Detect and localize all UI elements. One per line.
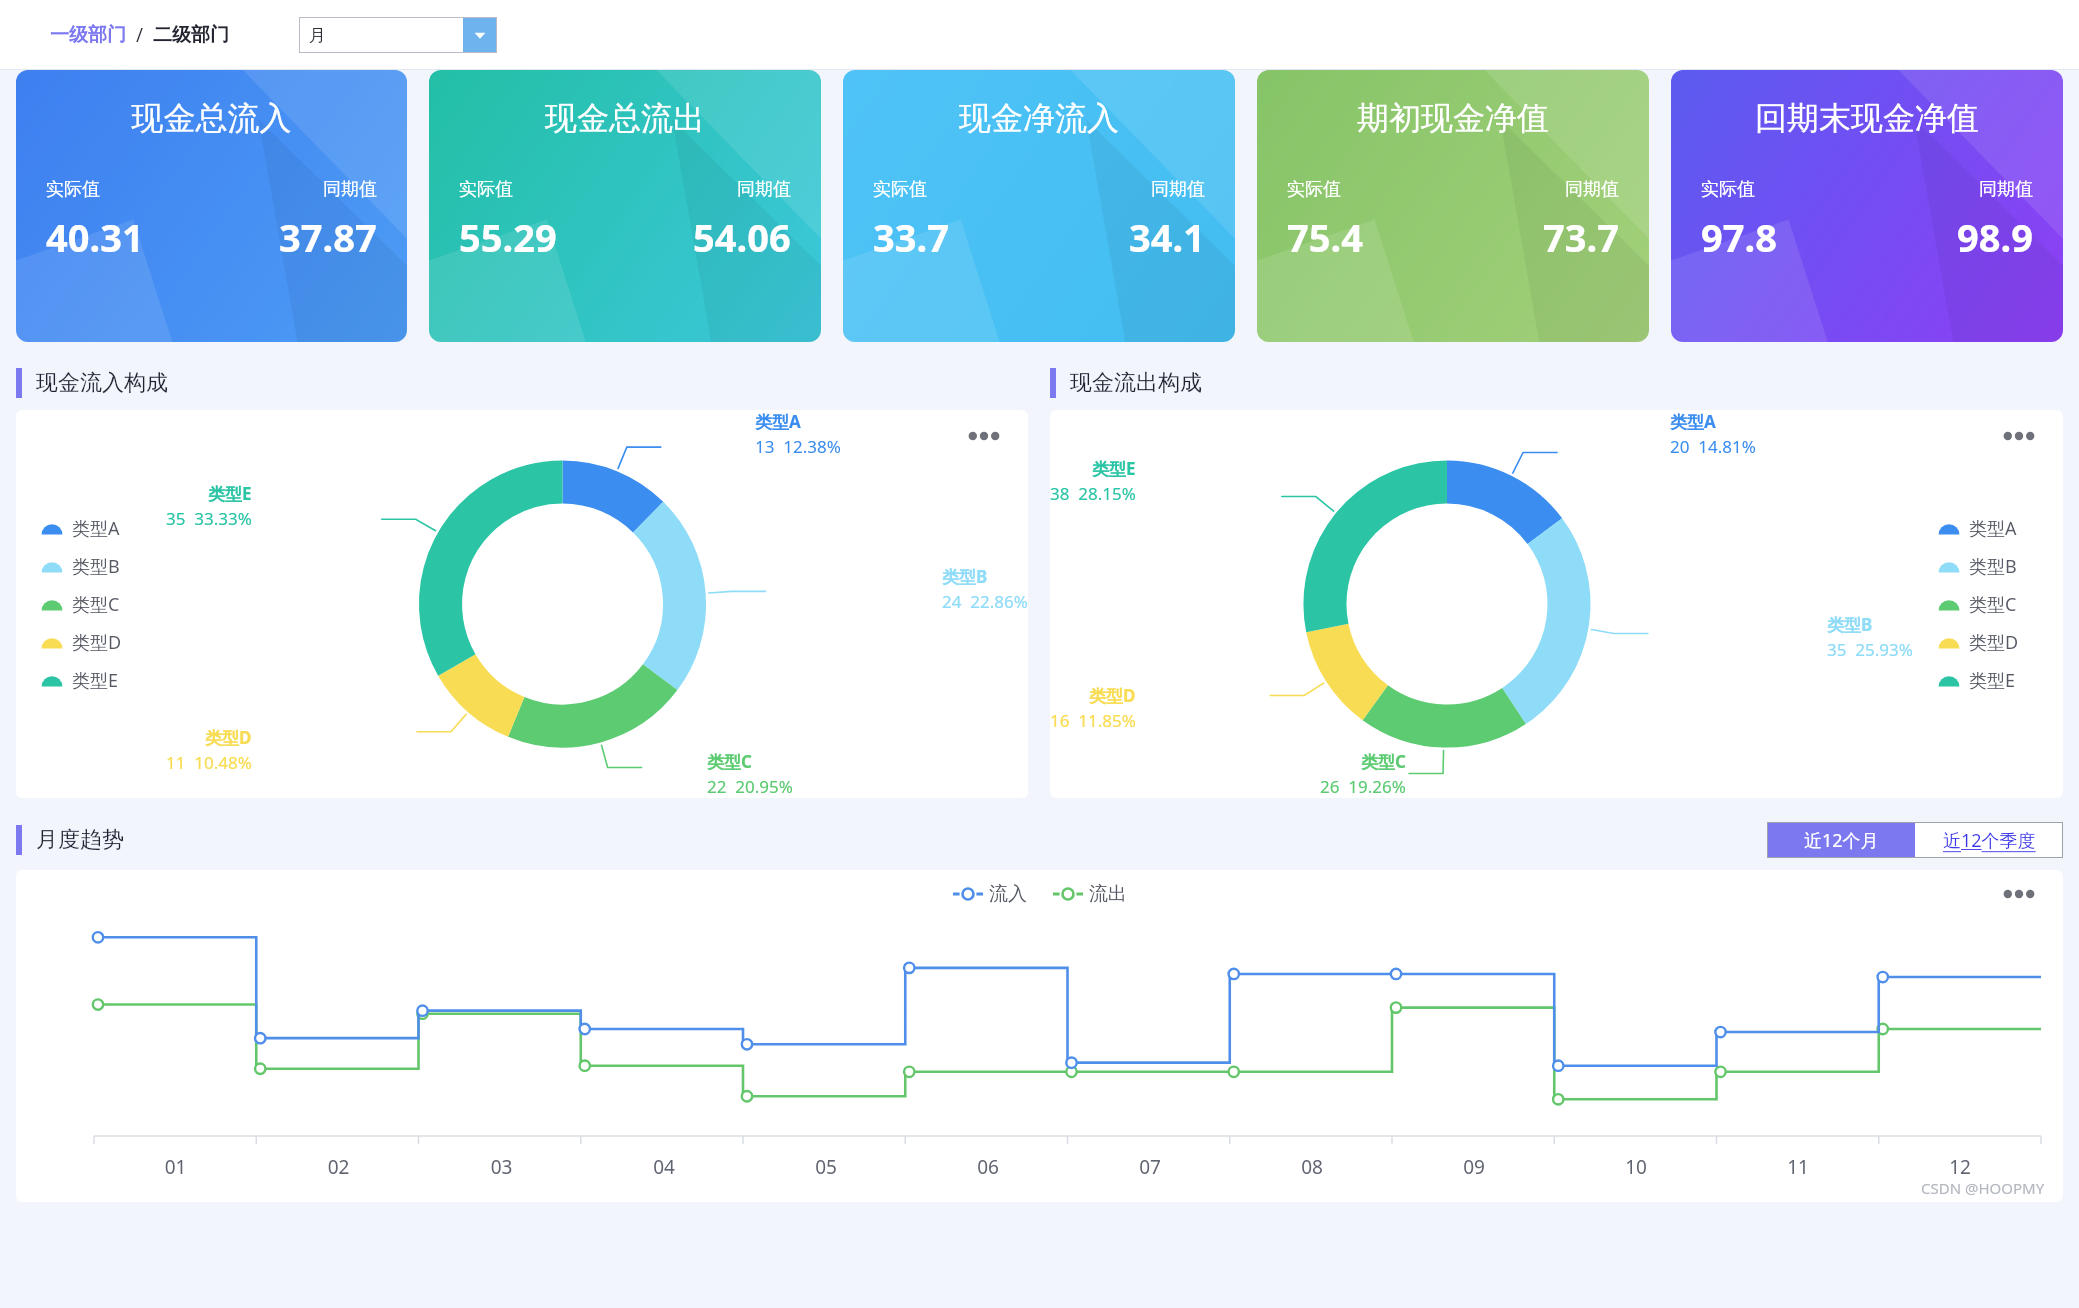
button[interactable]: 类型C — [1939, 585, 2017, 623]
staticText: 16 11.85% — [1050, 709, 1136, 732]
button[interactable]: More options — [962, 422, 1006, 450]
button[interactable]: 类型D — [42, 623, 122, 661]
staticText: 类型E — [208, 482, 252, 505]
staticText: 55.29 — [459, 211, 557, 263]
button[interactable]: 类型E — [1939, 661, 2016, 699]
button[interactable]: 现金净流入 — [843, 70, 1235, 342]
staticText: 流出 — [1089, 882, 1127, 906]
staticText: 实际值 — [1287, 178, 1341, 201]
staticText: 月度趋势 — [36, 826, 124, 854]
staticText: 近12个月 — [1804, 828, 1879, 853]
staticText: CSDN @HOOPMY — [1921, 1178, 2045, 1198]
staticText: 现金流入构成 — [36, 369, 168, 397]
staticText: 同期值 — [323, 178, 377, 201]
staticText: 09 — [1393, 1154, 1555, 1180]
staticText: 75.4 — [1287, 211, 1363, 263]
staticText: 类型B — [1827, 613, 1873, 636]
button[interactable]: 类型E — [42, 661, 119, 699]
button[interactable]: 近12个季度 — [1915, 822, 2063, 858]
button[interactable]: 类型B — [1939, 547, 2017, 585]
button[interactable]: More options — [1997, 880, 2041, 908]
staticText: 类型D — [205, 726, 252, 749]
staticText: 类型A — [755, 410, 801, 433]
staticText: 实际值 — [873, 178, 927, 201]
staticText: 10 — [1555, 1154, 1717, 1180]
button[interactable]: 二级部门 — [153, 23, 229, 47]
staticText: 同期值 — [1151, 178, 1205, 201]
staticText: 02 — [257, 1154, 420, 1180]
staticText: 类型A — [72, 516, 120, 541]
staticText: 类型C — [1361, 750, 1406, 773]
button[interactable]: More options — [1997, 422, 2041, 450]
staticText: 05 — [745, 1154, 907, 1180]
button[interactable]: 流出 — [1053, 882, 1127, 906]
staticText: 期初现金净值 — [1257, 98, 1649, 138]
staticText: 近12个季度 — [1943, 828, 2036, 853]
staticText: 11 — [1717, 1154, 1879, 1180]
staticText: 54.06 — [693, 211, 791, 263]
staticText: 流入 — [989, 882, 1027, 906]
staticText: 01 — [94, 1154, 257, 1180]
staticText: 12 — [1879, 1154, 2041, 1180]
staticText: 08 — [1231, 1154, 1393, 1180]
staticText: 04 — [583, 1154, 745, 1180]
staticText: 同期值 — [1979, 178, 2033, 201]
staticText: 实际值 — [459, 178, 513, 201]
staticText: 类型E — [1969, 668, 2016, 693]
staticText: 07 — [1069, 1154, 1231, 1180]
staticText: 13 12.38% — [755, 435, 841, 458]
staticText: 类型D — [72, 630, 122, 655]
staticText: 实际值 — [46, 178, 100, 201]
staticText: / — [126, 22, 153, 48]
staticText: 类型C — [1969, 592, 2017, 617]
button[interactable]: 回期末现金净值 — [1671, 70, 2063, 342]
staticText: 回期末现金净值 — [1671, 98, 2063, 138]
button[interactable]: 类型B — [42, 547, 120, 585]
staticText: 97.8 — [1701, 211, 1777, 263]
staticText: 34.1 — [1129, 211, 1205, 263]
staticText: 35 25.93% — [1827, 638, 1913, 661]
staticText: 类型C — [72, 592, 120, 617]
button[interactable]: 现金总流出 — [429, 70, 821, 342]
button[interactable]: 近12个月 — [1767, 822, 1915, 858]
staticText: 98.9 — [1957, 211, 2033, 263]
button[interactable]: 现金总流入 — [16, 70, 407, 342]
staticText: 类型C — [707, 750, 752, 773]
button[interactable]: 类型D — [1939, 623, 2019, 661]
staticText: 06 — [907, 1154, 1069, 1180]
staticText: 类型B — [1969, 554, 2017, 579]
staticText: 现金净流入 — [843, 98, 1235, 138]
button[interactable]: 月 — [299, 17, 497, 53]
button[interactable]: 期初现金净值 — [1257, 70, 1649, 342]
staticText: 现金流出构成 — [1070, 369, 1202, 397]
staticText: 73.7 — [1543, 211, 1619, 263]
staticText: 类型B — [72, 554, 120, 579]
staticText: 同期值 — [1565, 178, 1619, 201]
button[interactable]: 流入 — [953, 882, 1027, 906]
staticText: 20 14.81% — [1670, 435, 1756, 458]
button[interactable]: 一级部门 — [50, 23, 126, 47]
staticText: 11 10.48% — [166, 751, 252, 774]
button[interactable]: 类型C — [42, 585, 120, 623]
staticText: 类型E — [72, 668, 119, 693]
staticText: 35 33.33% — [166, 507, 252, 530]
staticText: 现金总流入 — [16, 98, 407, 138]
button[interactable]: 类型A — [1939, 509, 2017, 547]
staticText: 实际值 — [1701, 178, 1755, 201]
staticText: 33.7 — [873, 211, 949, 263]
staticText: 类型D — [1089, 684, 1136, 707]
button[interactable]: 类型A — [42, 509, 120, 547]
staticText: 24 22.86% — [942, 590, 1028, 613]
staticText: 类型A — [1969, 516, 2017, 541]
staticText: 38 28.15% — [1050, 482, 1136, 505]
staticText: 类型B — [942, 565, 988, 588]
staticText: 类型E — [1092, 457, 1136, 480]
